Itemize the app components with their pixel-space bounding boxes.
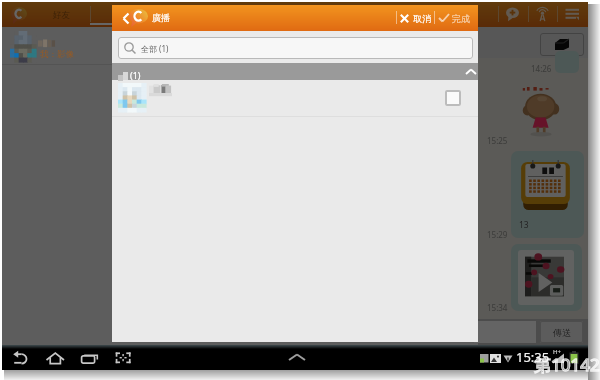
staticText: 第10142: [534, 353, 600, 376]
staticText: 好友: [53, 10, 70, 21]
staticText: 我：影像: [40, 49, 74, 60]
staticText: 15:35: [516, 348, 550, 366]
button[interactable]: (1): [112, 63, 478, 80]
staticText: 完成: [452, 13, 470, 24]
button[interactable]: 全部 (1): [118, 37, 473, 59]
button[interactable]: Home: [46, 352, 65, 365]
button[interactable]: New chat: [506, 7, 520, 22]
staticText: 15:34: [487, 302, 508, 313]
staticText: 13: [519, 219, 529, 231]
button[interactable]: Back: [115, 5, 137, 31]
button[interactable]: Recents: [81, 352, 99, 365]
button[interactable]: 完成: [438, 10, 470, 26]
button[interactable]: 我：影像: [2, 30, 112, 64]
button[interactable]: 傳送: [540, 321, 583, 343]
staticText: 15:29: [487, 229, 508, 240]
button[interactable]: Menu: [565, 8, 580, 21]
staticText: 廣播: [152, 12, 170, 23]
button[interactable]: Back: [13, 352, 31, 365]
staticText: 取消: [413, 13, 431, 24]
button[interactable]: [112, 80, 478, 116]
staticText: 傳送: [553, 327, 571, 338]
staticText: H+: [553, 348, 561, 356]
button[interactable]: Broadcast: [534, 8, 551, 22]
button[interactable]: Screenshot: [115, 352, 133, 365]
staticText: 全部 (1): [141, 43, 169, 54]
button[interactable]: 取消: [399, 10, 431, 26]
button[interactable]: Message input: [474, 321, 536, 343]
button[interactable]: Stickers: [540, 33, 584, 56]
staticText: (1): [130, 69, 141, 81]
staticText: 14:26: [531, 63, 552, 74]
staticText: 15:25: [487, 135, 508, 146]
button[interactable]: Expand: [287, 352, 307, 365]
